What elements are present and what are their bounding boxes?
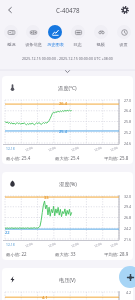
staticText: 设备信息 bbox=[25, 42, 42, 47]
staticText: 22 bbox=[5, 230, 10, 235]
staticText: 日志 bbox=[73, 42, 82, 47]
button[interactable]: 日志 bbox=[66, 22, 89, 52]
staticText: 12-18 bbox=[6, 146, 15, 150]
staticText: 4.2 bbox=[126, 290, 132, 295]
staticText: 最小值: 25.4 bbox=[6, 155, 31, 161]
button[interactable]: 概况 bbox=[0, 22, 22, 52]
button[interactable]: 温度(℃) bbox=[2, 76, 133, 164]
staticText: 12:00 bbox=[93, 242, 102, 248]
staticText: 12:00 bbox=[70, 242, 79, 248]
button[interactable]: 视频 bbox=[89, 22, 112, 52]
staticText: 25.4 bbox=[59, 129, 67, 134]
staticText: 最大值: 25.4 bbox=[55, 155, 80, 161]
staticText: 32.0 bbox=[124, 194, 132, 199]
staticText: 视频 bbox=[96, 42, 105, 47]
staticText: 设置 bbox=[119, 42, 128, 47]
button[interactable]: 设备信息 bbox=[22, 22, 44, 52]
button[interactable]: Add widget bbox=[119, 266, 135, 288]
button[interactable]: Back bbox=[0, 0, 20, 20]
staticText: 12-18 bbox=[6, 242, 15, 246]
button[interactable]: 电压(V) bbox=[2, 268, 133, 300]
staticText: 历史图表 bbox=[47, 42, 64, 47]
staticText: 12:00 bbox=[93, 146, 102, 152]
staticText: 最大值: 33 bbox=[55, 251, 76, 257]
staticText: 平均值: 28.9 bbox=[104, 251, 129, 257]
staticText: 12:00 bbox=[24, 146, 33, 152]
staticText: 25.8 bbox=[124, 119, 132, 124]
staticText: 25.2 bbox=[124, 130, 132, 135]
staticText: 33 bbox=[44, 195, 49, 200]
staticText: 最小值: 22 bbox=[6, 251, 27, 257]
staticText: C-40478 bbox=[56, 6, 80, 14]
staticText: 29.4 bbox=[124, 204, 132, 209]
staticText: 24.2 bbox=[124, 226, 132, 231]
button[interactable]: Collapse bbox=[0, 68, 135, 76]
staticText: 27.0 bbox=[124, 98, 132, 103]
staticText: 24.6 bbox=[124, 141, 132, 146]
staticText: 12:00 bbox=[109, 242, 118, 248]
button[interactable]: 湿度(%) bbox=[2, 172, 133, 260]
staticText: 26.4 bbox=[59, 101, 67, 106]
staticText: 湿度(%) bbox=[59, 180, 77, 187]
staticText: 平均值: 25.8 bbox=[104, 155, 129, 161]
staticText: 12:00 bbox=[70, 146, 79, 152]
staticText: 温度(℃) bbox=[58, 84, 77, 91]
staticText: 12:00 bbox=[47, 242, 56, 248]
staticText: 21.6 bbox=[124, 237, 132, 242]
staticText: 4.1 bbox=[42, 295, 48, 300]
button[interactable]: Settings bbox=[115, 0, 135, 20]
button[interactable]: 设置 bbox=[112, 22, 135, 52]
staticText: 26.8 bbox=[124, 215, 132, 220]
staticText: 26.4 bbox=[124, 108, 132, 113]
staticText: 电压(V) bbox=[59, 276, 76, 283]
button[interactable]: 2025-12-15 00:00:00 - 2025-12-15 00:00:0… bbox=[0, 54, 135, 63]
staticText: 概况 bbox=[7, 42, 16, 47]
button[interactable]: 历史图表 bbox=[44, 22, 66, 52]
staticText: 12:00 bbox=[47, 146, 56, 152]
staticText: 12:00 bbox=[24, 242, 33, 248]
staticText: 2025-12-15 00:00:00 - 2025-12-15 00:00:0… bbox=[22, 56, 113, 61]
staticText: 12:00 bbox=[109, 146, 118, 152]
